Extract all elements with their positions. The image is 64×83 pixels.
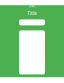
staticText: Title <box>27 9 37 16</box>
staticText: 9:41 <box>28 3 35 8</box>
